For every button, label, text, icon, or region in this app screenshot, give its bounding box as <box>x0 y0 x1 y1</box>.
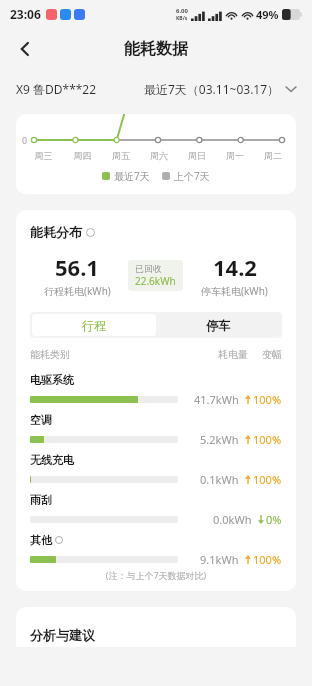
staticText: 空调 <box>30 413 52 427</box>
staticText: 行程 <box>82 318 106 333</box>
staticText: 已回收 <box>135 263 162 274</box>
staticText: 100% <box>253 392 282 407</box>
staticText: 最近7天 <box>114 169 150 183</box>
staticText: 周六 <box>140 150 178 161</box>
staticText: 耗电量 <box>218 348 248 361</box>
staticText: X9 鲁DD***22 <box>16 81 97 97</box>
staticText: 5.2kWh <box>200 432 239 447</box>
staticText: 行程耗电(kWh) <box>44 284 111 298</box>
staticText: 无线充电 <box>30 453 74 467</box>
staticText: 0 <box>22 134 28 146</box>
staticText: 停车 <box>206 318 230 333</box>
staticText: 100% <box>253 432 282 447</box>
staticText: 周二 <box>254 150 292 161</box>
staticText: 100% <box>253 552 282 567</box>
staticText: 能耗数据 <box>124 39 188 59</box>
staticText: 停车耗电(kWh) <box>201 284 268 298</box>
staticText: 22.6kWh <box>135 274 176 288</box>
button[interactable]: 行程 <box>32 314 156 336</box>
staticText: 分析与建议 <box>30 627 95 643</box>
staticText: KB/s <box>176 15 188 22</box>
staticText: 周三 <box>24 150 63 161</box>
staticText: 其他 <box>30 533 52 547</box>
staticText: (注：与上个7天数据对比) <box>16 569 296 581</box>
button[interactable]: X9 鲁DD***22 <box>16 81 97 97</box>
button[interactable]: 最近7天（03.11~03.17） <box>144 81 296 97</box>
staticText: 49% <box>256 7 279 22</box>
staticText: 最近7天（03.11~03.17） <box>144 81 280 97</box>
staticText: 14.2 <box>213 252 257 282</box>
staticText: 周一 <box>216 150 254 161</box>
staticText: 23:06 <box>10 6 41 22</box>
staticText: 能耗分布 <box>30 224 82 240</box>
staticText: 变幅 <box>262 348 282 361</box>
staticText: 41.7kWh <box>194 392 239 407</box>
staticText: 56.1 <box>55 252 99 282</box>
staticText: 6.00 <box>176 7 188 15</box>
staticText: 0.1kWh <box>200 472 239 487</box>
button[interactable]: Back <box>8 32 42 66</box>
staticText: 0.0kWh <box>213 512 252 527</box>
staticText: 电驱系统 <box>30 373 74 387</box>
staticText: 周日 <box>178 150 216 161</box>
staticText: 能耗类别 <box>30 348 70 361</box>
staticText: 上个7天 <box>174 169 210 183</box>
button[interactable]: 停车 <box>156 314 280 336</box>
staticText: 雨刮 <box>30 493 52 507</box>
staticText: 100% <box>253 472 282 487</box>
staticText: 周五 <box>102 150 140 161</box>
staticText: 0% <box>266 512 282 527</box>
staticText: 周四 <box>63 150 102 161</box>
staticText: 9.1kWh <box>200 552 239 567</box>
